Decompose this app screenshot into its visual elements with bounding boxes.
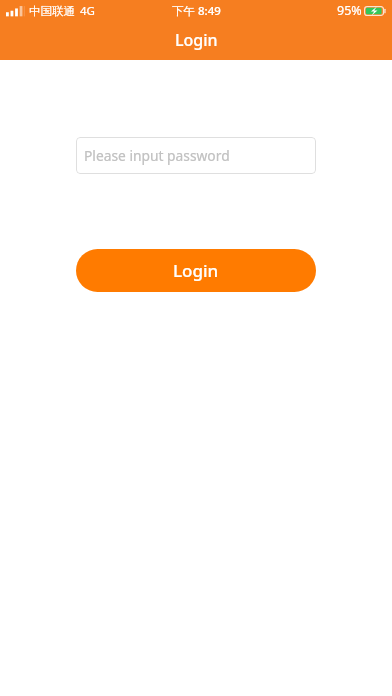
- staticText: Login: [175, 29, 218, 51]
- staticText: Please input password: [84, 146, 230, 165]
- staticText: 4G: [80, 3, 95, 19]
- other: Battery 95 percent charging: [364, 6, 386, 16]
- staticText: 下午 8:49: [172, 3, 221, 19]
- button[interactable]: Please input password: [76, 137, 316, 174]
- button[interactable]: Login: [76, 249, 316, 292]
- other: Cellular signal strength: [6, 6, 25, 17]
- staticText: Login: [173, 259, 219, 282]
- staticText: 95%: [337, 2, 362, 19]
- staticText: 中国联通: [29, 4, 75, 18]
